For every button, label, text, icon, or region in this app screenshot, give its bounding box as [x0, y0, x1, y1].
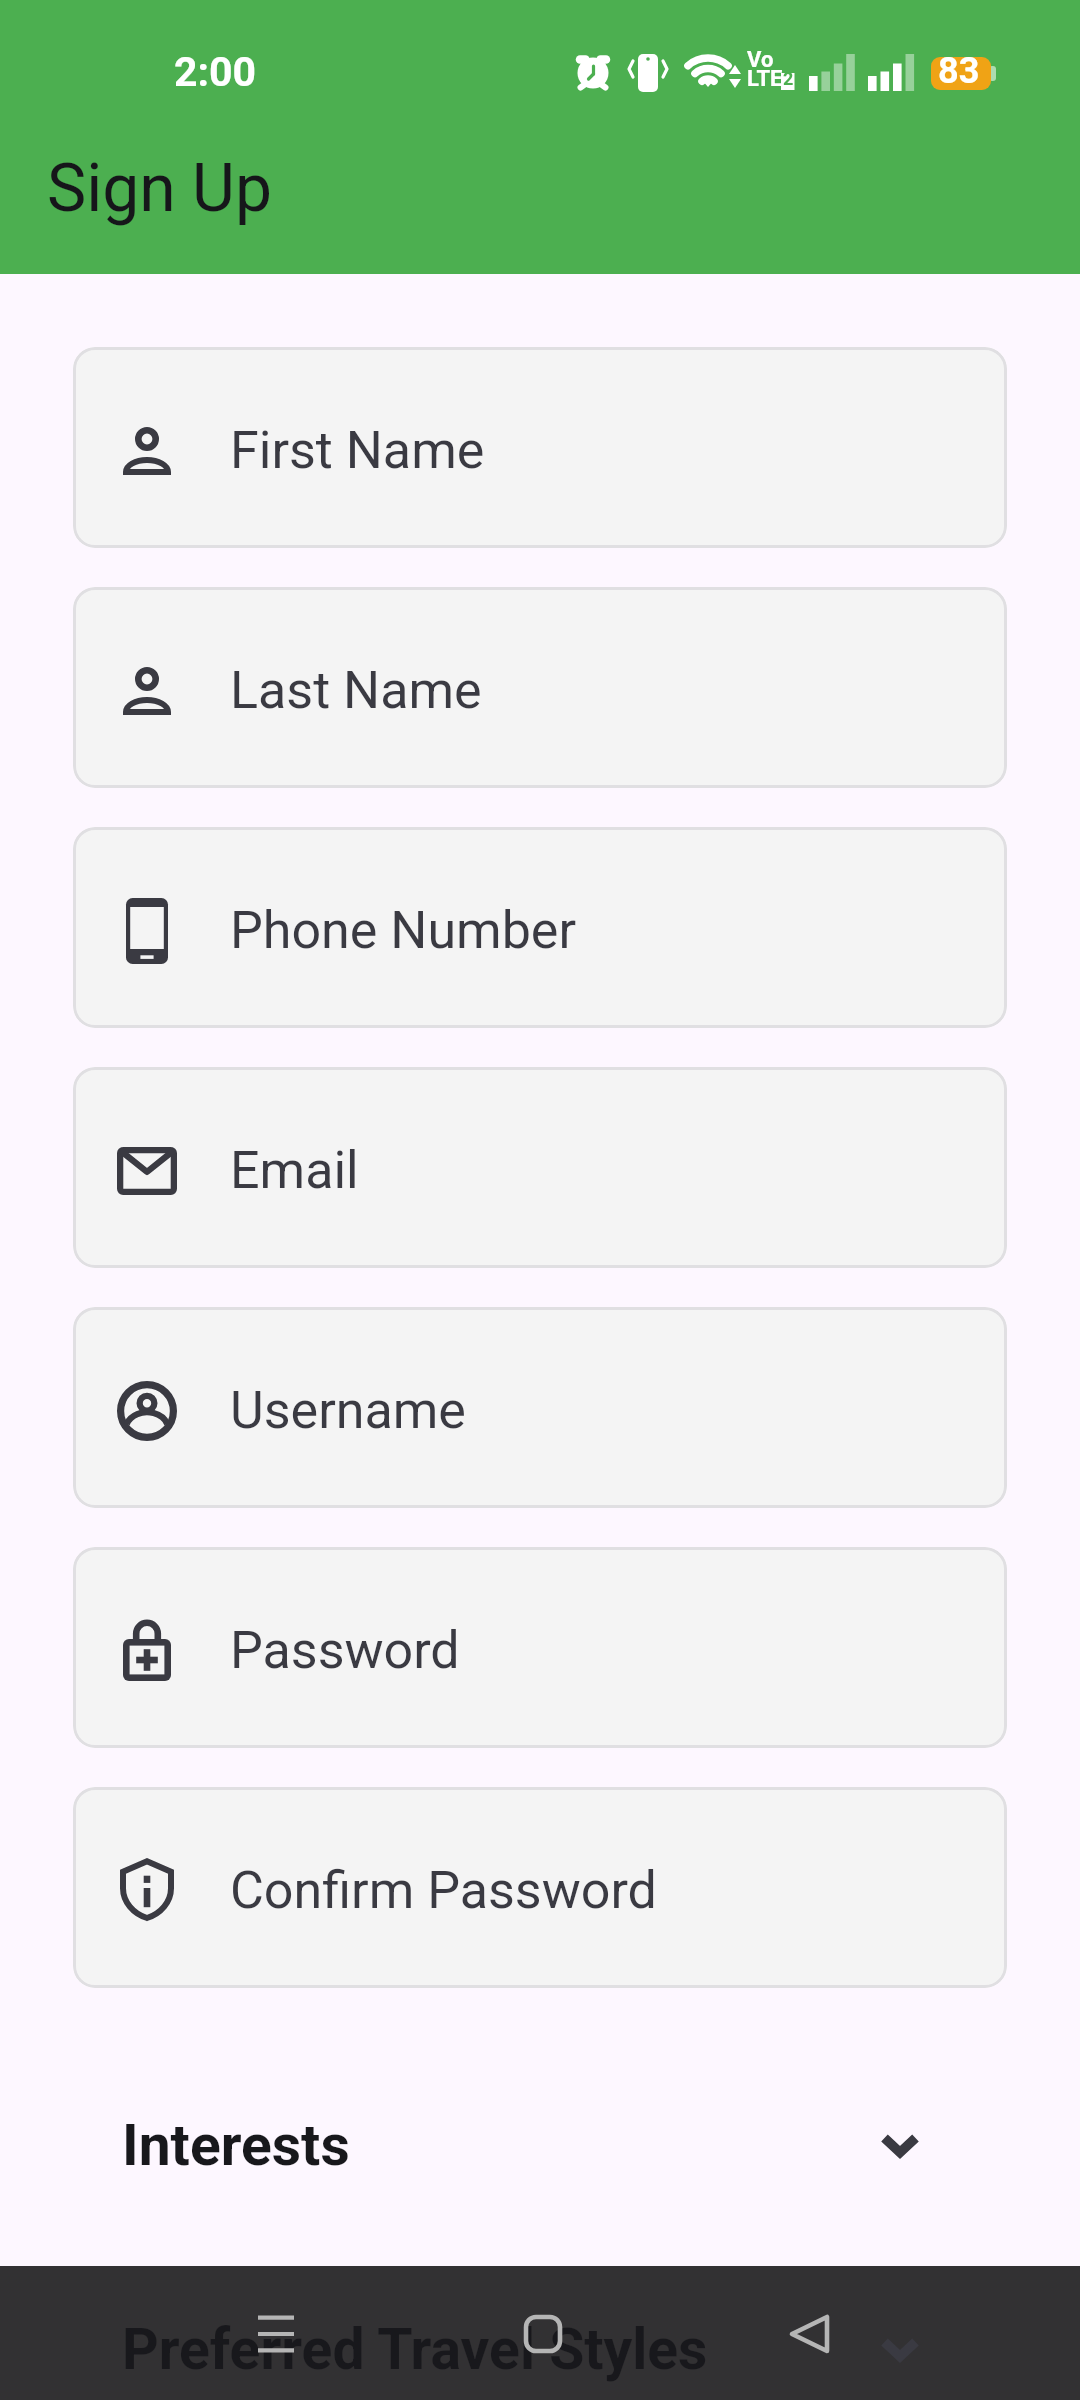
button[interactable]: Username	[73, 1307, 1007, 1508]
staticText: Confirm Password	[230, 1860, 657, 1921]
staticText: First Name	[230, 420, 485, 481]
staticText: 2	[783, 68, 794, 89]
button[interactable]: Interests	[122, 2105, 927, 2185]
staticText: Preferred Travel Styles	[122, 2316, 708, 2383]
button[interactable]: Recents	[201, 2266, 351, 2400]
staticText: LTE	[747, 66, 783, 92]
button[interactable]: Preferred Travel Styles	[122, 2309, 927, 2389]
staticText: Password	[230, 1620, 460, 1681]
staticText: Email	[230, 1140, 359, 1201]
staticText: Last Name	[230, 660, 482, 721]
button[interactable]: Email	[73, 1067, 1007, 1268]
staticText: 2:00	[174, 48, 257, 96]
button[interactable]: Back	[735, 2266, 885, 2400]
staticText: 83	[938, 50, 980, 92]
staticText: Sign Up	[47, 150, 272, 227]
button[interactable]: Home	[468, 2266, 618, 2400]
button[interactable]: Phone Number	[73, 827, 1007, 1028]
staticText: Vo	[747, 47, 774, 73]
button[interactable]: First Name	[73, 347, 1007, 548]
button[interactable]: Last Name	[73, 587, 1007, 788]
staticText: Username	[230, 1380, 466, 1441]
staticText: Interests	[122, 2112, 350, 2179]
staticText: Phone Number	[230, 900, 577, 961]
button[interactable]: Confirm Password	[73, 1787, 1007, 1988]
button[interactable]: Password	[73, 1547, 1007, 1748]
